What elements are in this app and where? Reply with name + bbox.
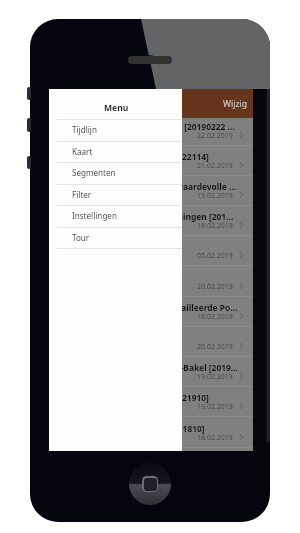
staticText: Filter bbox=[72, 189, 92, 200]
staticText: 19.02.2019 bbox=[197, 402, 233, 412]
staticText: Rit Helmond - Deurne - Aasten [20190222 … bbox=[56, 121, 238, 132]
staticText: 18.02.2019 bbox=[197, 433, 233, 443]
staticText: Menu bbox=[104, 102, 129, 114]
button[interactable]: Segmenten bbox=[49, 162, 182, 183]
button[interactable]: Kaart bbox=[49, 141, 182, 162]
staticText: 18.02.2019 bbox=[197, 221, 233, 231]
staticText: Een zeer uitgebreide en gedetailleerde P… bbox=[56, 302, 238, 313]
staticText: 19.02.2019 bbox=[197, 372, 233, 382]
button[interactable]: 20.02.2019 bbox=[49, 267, 253, 297]
staticText: Rit van Helmond richting Groningen [2019… bbox=[56, 211, 238, 222]
staticText: 22.02.2019 bbox=[197, 131, 233, 141]
button[interactable]: Rit Helmond - Helmond [2019022114] bbox=[49, 146, 253, 176]
staticText: 18.02.2019 bbox=[197, 312, 233, 322]
button[interactable]: Tour bbox=[49, 227, 182, 248]
staticText: Wijzig bbox=[223, 98, 247, 110]
staticText: 19.02.2019 bbox=[197, 191, 233, 201]
button[interactable]: Rit Helmond - Gemert [201902 1810] bbox=[49, 418, 253, 448]
button[interactable]: 20.02.2019 bbox=[49, 327, 253, 357]
button[interactable]: Rit van Helmond richting Groningen [2019… bbox=[49, 206, 253, 236]
staticText: 05.02.2019 bbox=[197, 251, 233, 261]
button[interactable]: Instellingen bbox=[49, 205, 182, 226]
button[interactable]: Rit Helmond - Helmond [2019021910] bbox=[49, 387, 253, 417]
staticText: Instellingen bbox=[72, 210, 117, 221]
button[interactable]: Wijzig bbox=[217, 94, 253, 114]
staticText: Tour bbox=[72, 232, 90, 243]
staticText: Rit Helmond - Helmond [2019022114] bbox=[56, 151, 238, 162]
button[interactable]: Tijdlijn bbox=[49, 119, 182, 140]
button[interactable]: Een bijzonder mooie en zeer waardevolle … bbox=[49, 176, 253, 206]
staticText: Een bijzonder mooie en zeer waardevolle … bbox=[56, 181, 238, 192]
button[interactable]: Filter bbox=[49, 184, 182, 205]
staticText: Tijdlijn bbox=[72, 124, 97, 135]
button[interactable]: Mijn mooiste ritje in Helmond-Bakel [201… bbox=[49, 357, 253, 387]
staticText: Rit Helmond - Helmond [2019021910] bbox=[56, 392, 238, 403]
button[interactable]: Rit Helmond - Deurne - Aasten [20190222 … bbox=[49, 116, 253, 146]
staticText: Mijn mooiste ritje in Helmond-Bakel [201… bbox=[56, 362, 238, 373]
staticText: Segmenten bbox=[72, 167, 116, 178]
staticText: 20.02.2019 bbox=[197, 342, 233, 352]
button[interactable]: Een zeer uitgebreide en gedetailleerde P… bbox=[49, 297, 253, 327]
staticText: Rit Helmond - Gemert [201902 1810] bbox=[56, 423, 238, 434]
staticText: Kaart bbox=[72, 146, 93, 157]
button[interactable]: 05.02.2019 bbox=[49, 236, 253, 266]
staticText: 20.02.2019 bbox=[197, 282, 233, 292]
staticText: 21.02.2019 bbox=[197, 161, 233, 171]
